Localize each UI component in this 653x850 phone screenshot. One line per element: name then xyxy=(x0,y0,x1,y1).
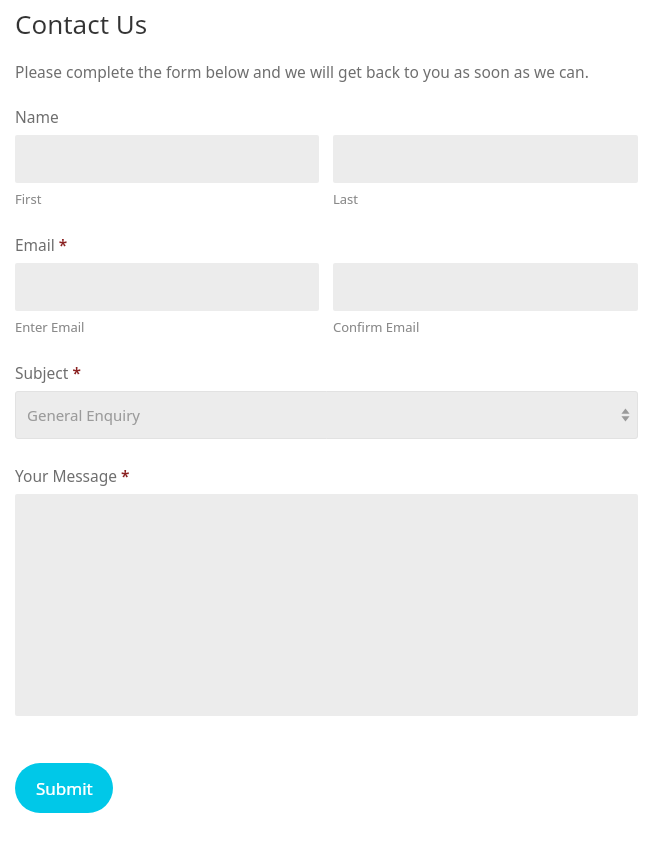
staticText: First xyxy=(15,190,42,208)
staticText: Please complete the form below and we wi… xyxy=(15,61,589,82)
staticText: Email * xyxy=(15,234,68,255)
button[interactable]: Submit xyxy=(15,763,113,813)
staticText: Enter Email xyxy=(15,318,85,336)
staticText: Last xyxy=(333,190,359,208)
staticText: Subject * xyxy=(15,362,81,383)
staticText: Name xyxy=(15,106,59,127)
staticText: General Enquiry xyxy=(27,405,141,425)
button[interactable]: Subject dropdown xyxy=(15,391,638,439)
staticText: Contact Us xyxy=(15,6,148,41)
staticText: Confirm Email xyxy=(333,318,420,336)
staticText: Submit xyxy=(36,777,93,800)
staticText: Your Message * xyxy=(15,465,130,486)
